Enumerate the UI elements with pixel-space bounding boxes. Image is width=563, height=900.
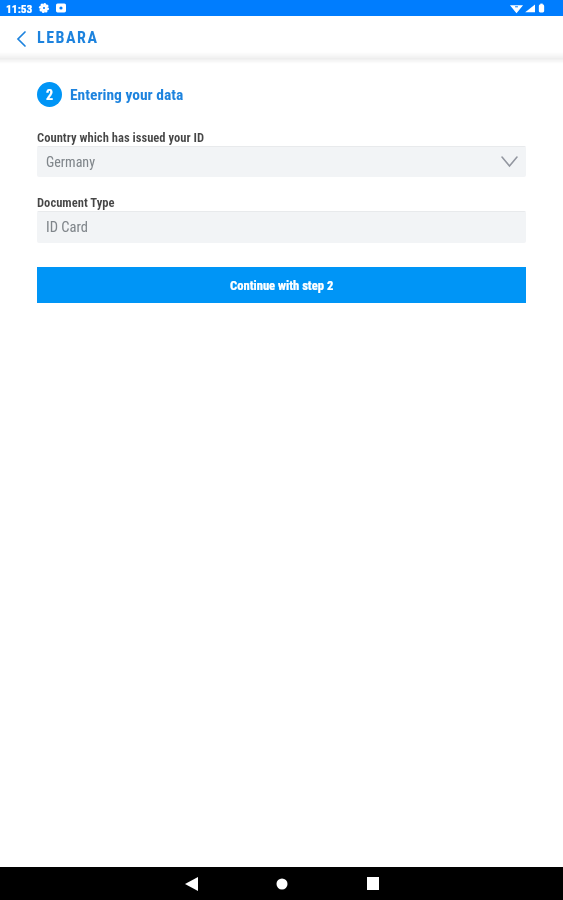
staticText: Country which has issued your ID (37, 130, 205, 145)
staticText: Document Type (37, 195, 115, 210)
button[interactable]: Country which has issued your ID (37, 146, 526, 177)
staticText: Germany (46, 154, 95, 170)
button[interactable]: Recent apps (349, 867, 397, 900)
staticText: LEBARA (37, 28, 99, 47)
staticText: 11:53 (6, 2, 33, 15)
button[interactable]: ID Card (37, 211, 526, 243)
button[interactable]: Back (0, 16, 37, 58)
button[interactable]: Home (258, 867, 306, 900)
staticText: Entering your data (70, 86, 184, 104)
button[interactable]: Back (167, 867, 215, 900)
staticText: 2 (46, 87, 54, 103)
staticText: ID Card (46, 219, 88, 236)
button[interactable]: Continue with step 2 (37, 267, 526, 303)
staticText: Continue with step 2 (230, 278, 334, 293)
